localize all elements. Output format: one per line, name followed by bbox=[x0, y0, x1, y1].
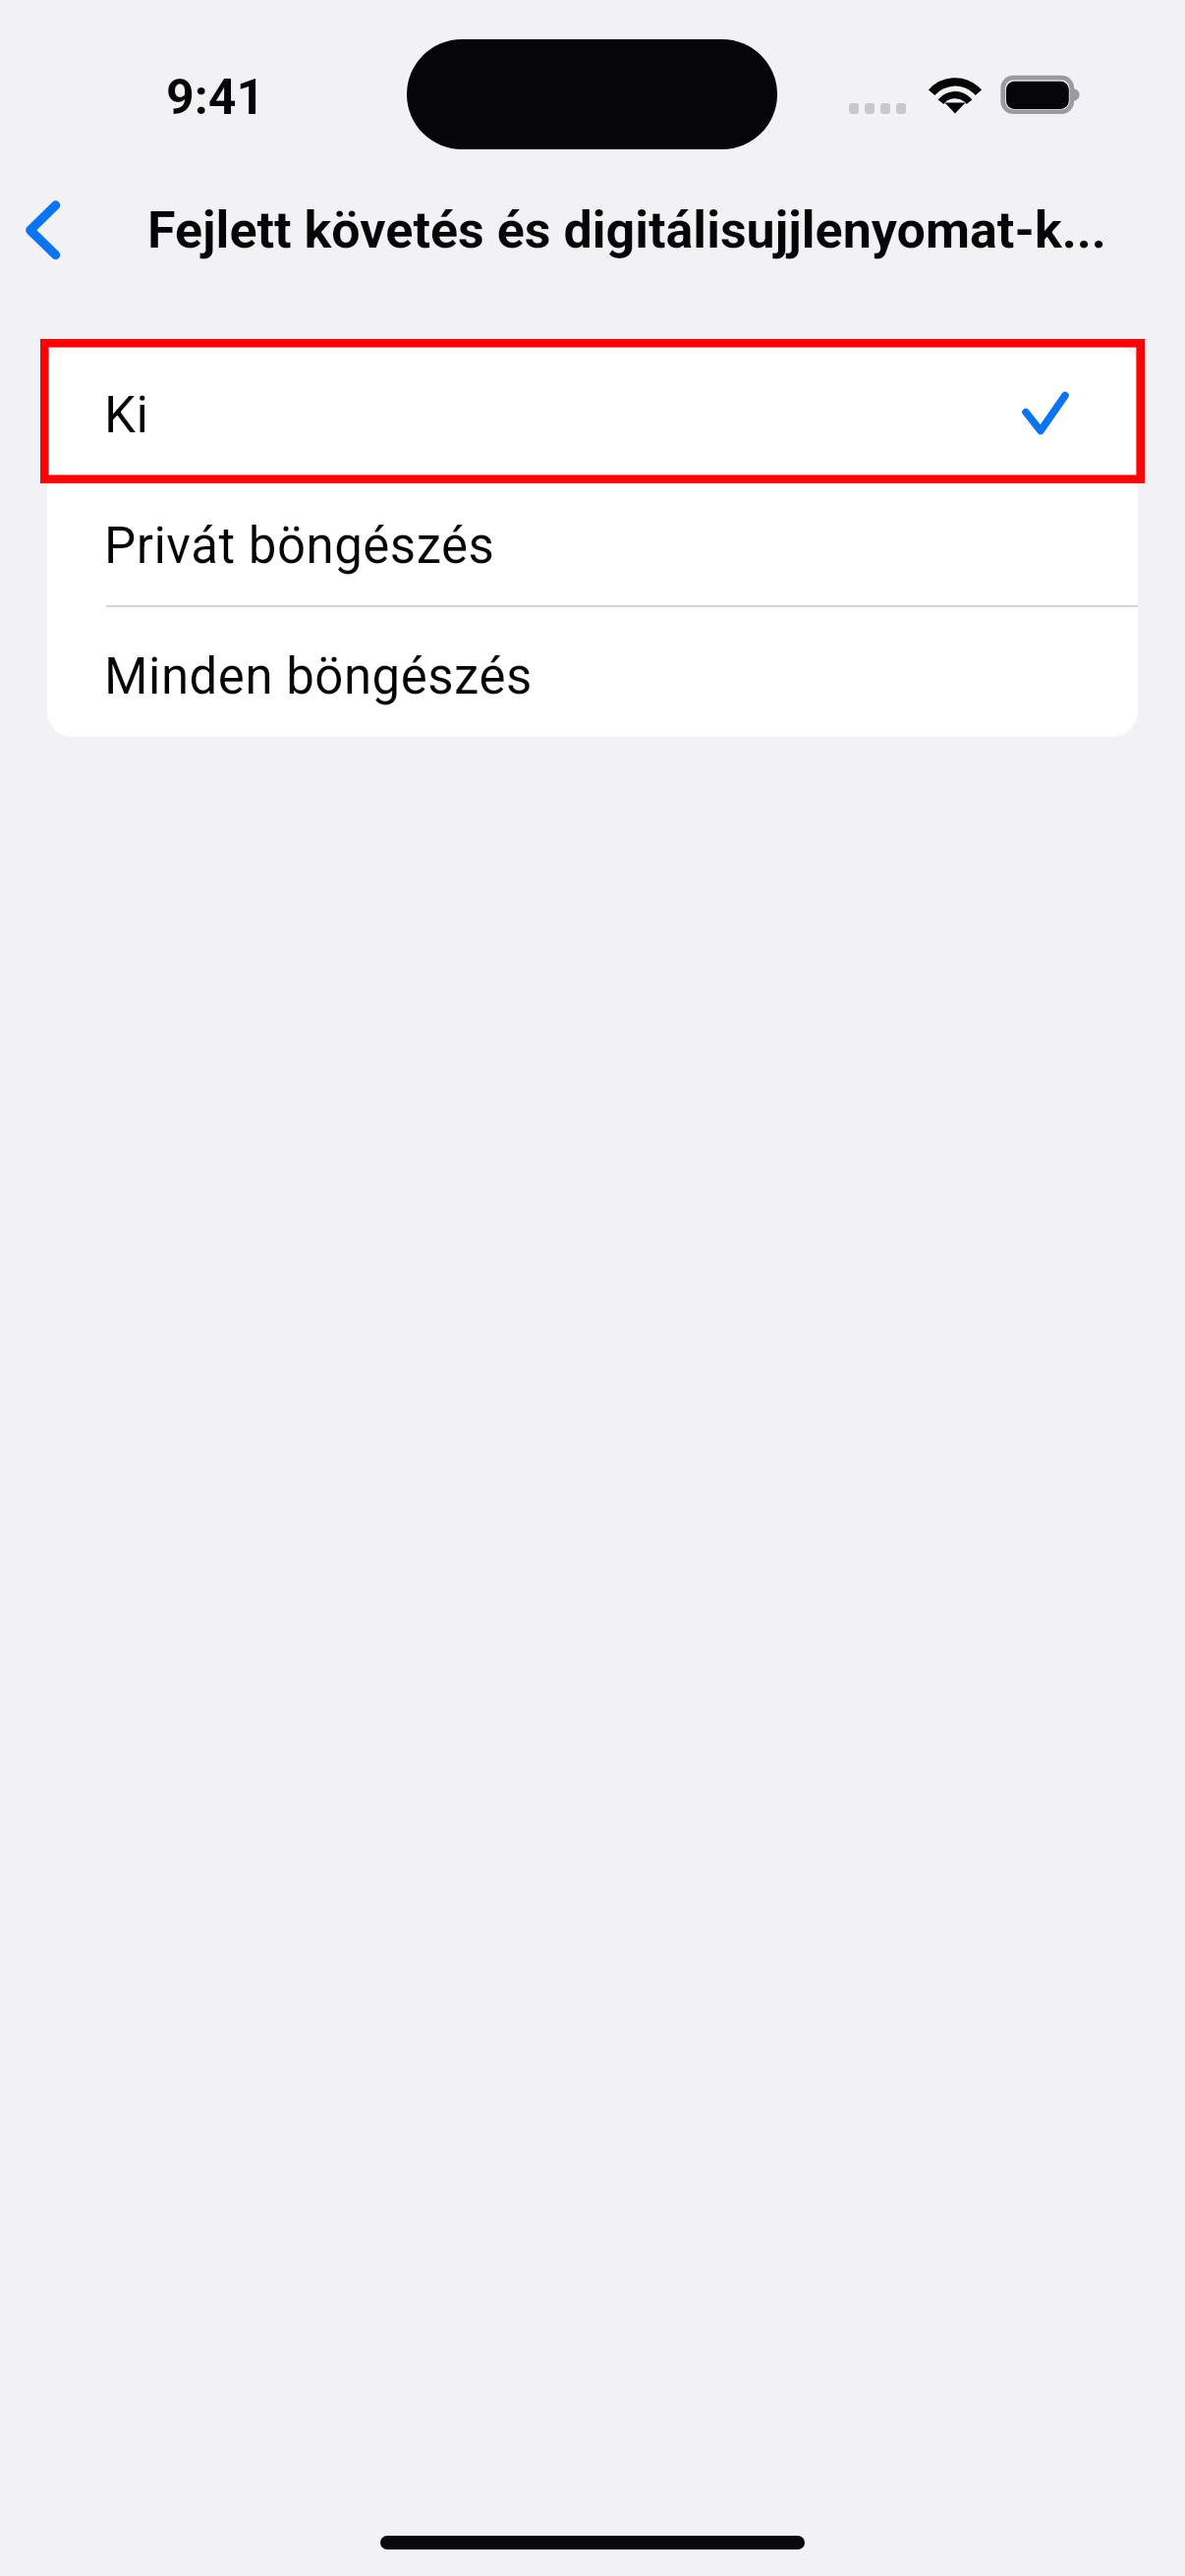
button[interactable]: Privát böngészés bbox=[47, 475, 1138, 605]
staticText: Minden böngészés bbox=[104, 647, 533, 706]
staticText: Privát böngészés bbox=[104, 517, 495, 576]
button[interactable]: Minden böngészés bbox=[47, 605, 1138, 736]
button[interactable]: Back bbox=[0, 177, 100, 285]
staticText: Ki bbox=[104, 386, 149, 445]
button[interactable]: Ki bbox=[47, 344, 1138, 475]
staticText: 9:41 bbox=[166, 69, 265, 127]
staticText: Fejlett követés és digitálisujjlenyomat-… bbox=[147, 200, 1106, 260]
